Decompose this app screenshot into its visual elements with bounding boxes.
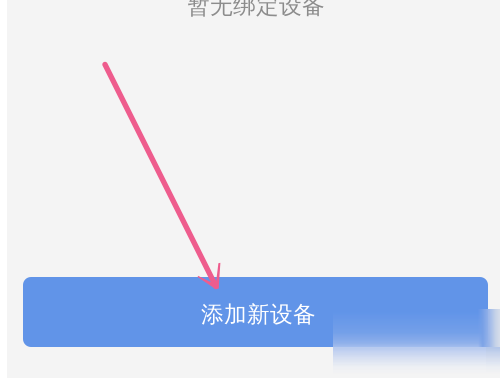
staticText: 暂无绑定设备 bbox=[187, 0, 325, 20]
button[interactable]: 添加新设备 bbox=[23, 277, 488, 347]
staticText: 添加新设备 bbox=[201, 301, 316, 328]
